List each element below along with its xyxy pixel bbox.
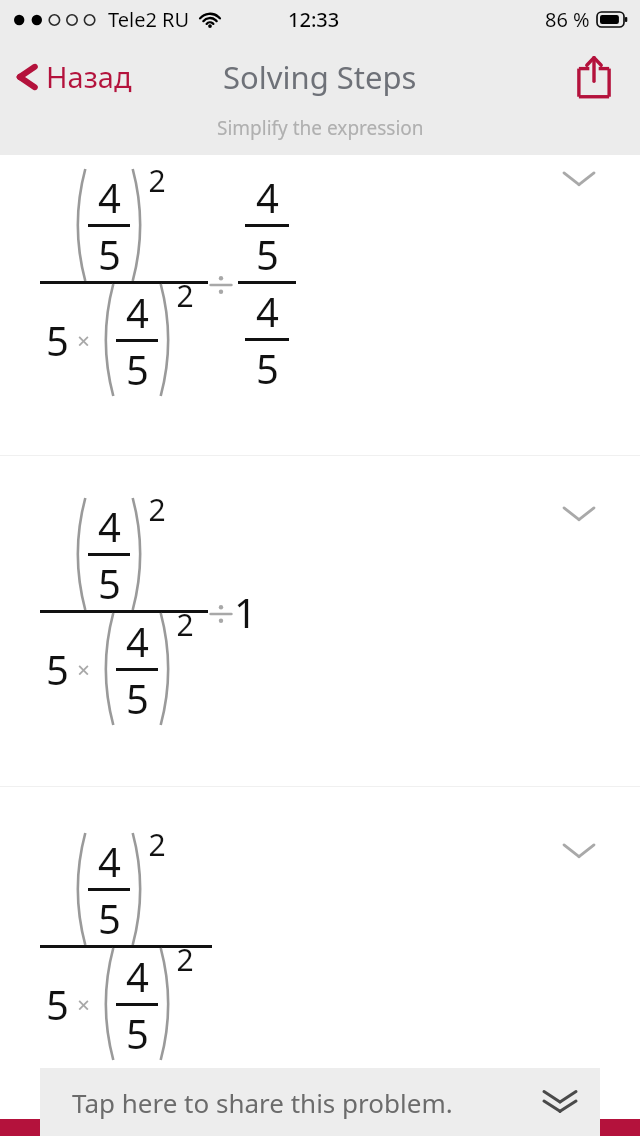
button[interactable]: 4	[0, 155, 640, 455]
staticText: 2	[148, 824, 166, 865]
staticText: 1	[234, 585, 257, 639]
staticText: Solving Steps	[223, 56, 417, 98]
staticText: 4	[98, 834, 121, 888]
staticText: 4	[98, 499, 121, 553]
button[interactable]: Назад	[14, 57, 132, 96]
button[interactable]: 4	[0, 456, 640, 786]
staticText: 2	[148, 160, 166, 201]
staticText: 5	[256, 341, 279, 395]
staticText: 5	[46, 313, 69, 367]
staticText: 4	[256, 284, 279, 338]
staticText: 2	[176, 604, 194, 645]
button[interactable]: Share	[570, 53, 618, 101]
staticText: 2	[176, 275, 194, 316]
staticText: 5	[256, 227, 279, 281]
staticText: Tele2 RU	[108, 6, 190, 33]
staticText: 4	[126, 949, 149, 1003]
staticText: ×	[77, 325, 90, 355]
button[interactable]: 4	[0, 787, 640, 1136]
staticText: 4	[98, 170, 121, 224]
staticText: 5	[98, 556, 121, 610]
staticText: ×	[77, 989, 90, 1019]
button[interactable]: Expand step	[556, 498, 602, 528]
staticText: ×	[77, 654, 90, 684]
staticText: 2	[148, 489, 166, 530]
staticText: Назад	[46, 57, 132, 96]
staticText: 86 %	[545, 6, 590, 33]
button[interactable]: Expand step	[556, 163, 602, 193]
staticText: 2	[176, 939, 194, 980]
staticText: Simplify the expression	[217, 115, 424, 141]
staticText: 4	[126, 285, 149, 339]
staticText: 12:33	[288, 6, 340, 33]
staticText: 5	[126, 342, 149, 396]
staticText: 4	[126, 614, 149, 668]
staticText: 5	[126, 671, 149, 725]
staticText: 5	[98, 227, 121, 281]
staticText: Tap here to share this problem.	[72, 1085, 453, 1120]
staticText: 5	[46, 642, 69, 696]
staticText: 5	[46, 977, 69, 1031]
button[interactable]: Tap here to share this problem.	[40, 1068, 600, 1136]
staticText: 5	[98, 891, 121, 945]
staticText: 5	[126, 1006, 149, 1060]
staticText: 4	[256, 170, 279, 224]
button[interactable]: Expand step	[556, 835, 602, 865]
